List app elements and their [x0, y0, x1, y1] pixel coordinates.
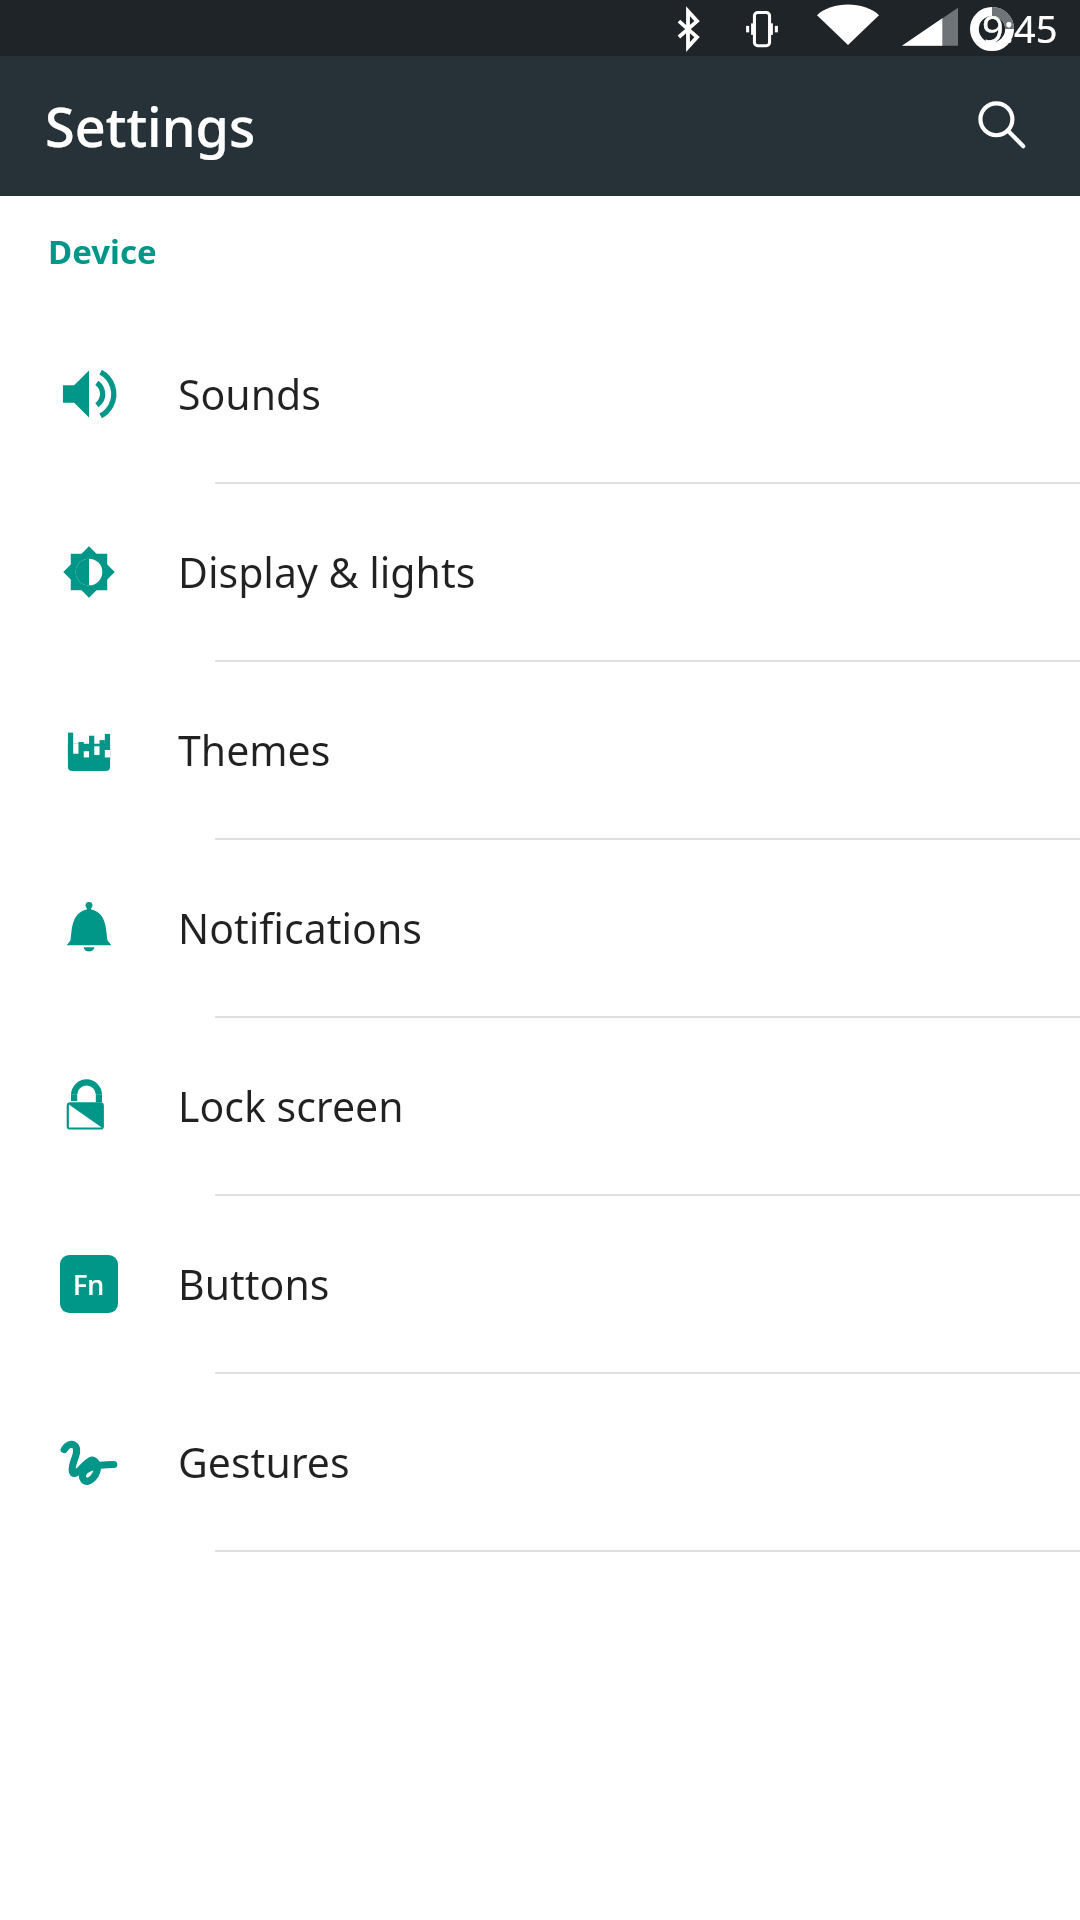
button[interactable]: Themes: [0, 662, 1080, 838]
staticText: Sounds: [178, 366, 321, 422]
staticText: Notifications: [178, 900, 422, 956]
button[interactable]: Search: [954, 78, 1050, 174]
button[interactable]: Sounds: [0, 306, 1080, 482]
button[interactable]: Gestures: [0, 1374, 1080, 1550]
staticText: Device: [48, 229, 157, 274]
button[interactable]: Fn: [0, 1196, 1080, 1372]
staticText: Fn: [73, 1266, 105, 1303]
staticText: Buttons: [178, 1256, 330, 1312]
staticText: Settings: [45, 89, 256, 163]
button[interactable]: Lock screen: [0, 1018, 1080, 1194]
staticText: Display & lights: [178, 544, 476, 600]
staticText: Themes: [178, 722, 331, 778]
staticText: Gestures: [178, 1434, 350, 1490]
staticText: 9:45: [982, 2, 1058, 54]
button[interactable]: Notifications: [0, 840, 1080, 1016]
staticText: Lock screen: [178, 1078, 404, 1134]
button[interactable]: Display & lights: [0, 484, 1080, 660]
